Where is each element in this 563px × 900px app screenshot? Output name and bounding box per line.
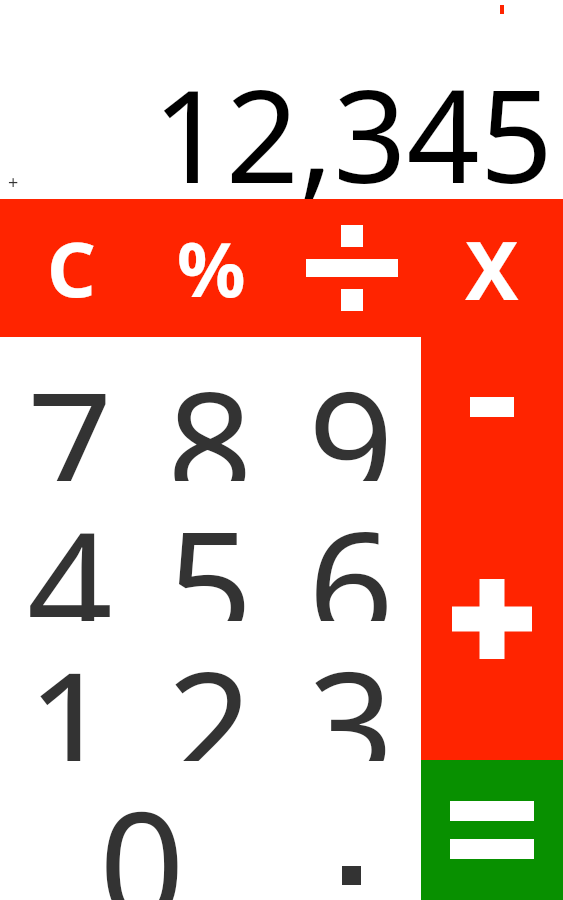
button[interactable]: Percent bbox=[143, 199, 280, 337]
staticText: 4 bbox=[27, 481, 113, 621]
staticText: C bbox=[47, 216, 96, 320]
button[interactable]: Divide bbox=[283, 199, 421, 337]
button[interactable]: Multiply bbox=[421, 199, 563, 337]
staticText: 8 bbox=[167, 341, 253, 481]
staticText: 3 bbox=[308, 621, 394, 761]
staticText: 5 bbox=[167, 481, 253, 621]
button[interactable]: Minus bbox=[421, 337, 563, 477]
staticText: 12,345 bbox=[0, 46, 553, 220]
button[interactable]: Clear bbox=[3, 199, 140, 337]
button[interactable]: 0 bbox=[72, 761, 212, 900]
button[interactable]: 6 bbox=[281, 481, 421, 621]
staticText: 7 bbox=[27, 341, 113, 481]
button[interactable]: 4 bbox=[0, 481, 140, 621]
staticText: 1 bbox=[27, 621, 113, 761]
staticText: + bbox=[8, 170, 19, 195]
button[interactable]: 3 bbox=[281, 621, 421, 761]
button[interactable]: 9 bbox=[281, 341, 421, 481]
staticText: X bbox=[465, 214, 519, 323]
button[interactable]: 8 bbox=[140, 341, 280, 481]
button[interactable]: Equals bbox=[421, 760, 563, 900]
staticText: 9 bbox=[308, 341, 394, 481]
button[interactable]: 5 bbox=[140, 481, 280, 621]
staticText: 6 bbox=[308, 481, 394, 621]
button[interactable]: 1 bbox=[0, 621, 140, 761]
staticText: % bbox=[177, 216, 246, 320]
button[interactable]: 7 bbox=[0, 341, 140, 481]
button[interactable]: Plus bbox=[421, 477, 563, 760]
staticText: 0 bbox=[99, 761, 185, 900]
button[interactable]: 2 bbox=[140, 621, 280, 761]
staticText: 2 bbox=[167, 621, 253, 761]
button[interactable]: Decimal point bbox=[281, 761, 421, 900]
